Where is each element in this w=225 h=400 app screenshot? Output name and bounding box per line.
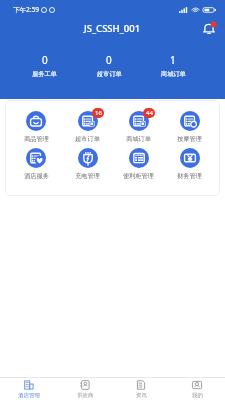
- staticText: 超市订单: [75, 135, 100, 143]
- staticText: 按摩管理: [177, 135, 202, 143]
- button[interactable]: 按摩管理: [164, 111, 215, 143]
- staticText: 服务工单: [32, 70, 57, 78]
- staticText: 便利柜管理: [123, 172, 154, 180]
- button[interactable]: 0: [77, 40, 141, 78]
- button[interactable]: 充电管理: [62, 148, 113, 180]
- button[interactable]: 0: [12, 40, 77, 78]
- staticText: 44: [146, 109, 153, 117]
- button[interactable]: 我的: [169, 378, 225, 400]
- staticText: 0: [106, 53, 112, 67]
- button[interactable]: 财务管理: [164, 148, 215, 180]
- staticText: 下午2:59: [13, 5, 39, 14]
- staticText: 0: [42, 53, 48, 67]
- staticText: 财务管理: [177, 172, 202, 180]
- button[interactable]: 供应商: [57, 378, 113, 400]
- button[interactable]: Notifications: [200, 20, 218, 38]
- staticText: 供应商: [77, 392, 94, 399]
- staticText: 商品管理: [24, 135, 49, 143]
- staticText: 16: [95, 109, 102, 117]
- staticText: JS_CSSH_001: [84, 22, 141, 35]
- staticText: 酒店服务: [24, 172, 49, 180]
- staticText: 商城订单: [161, 70, 186, 78]
- button[interactable]: 酒店管理: [0, 378, 57, 400]
- staticText: 商城订单: [126, 135, 151, 143]
- button[interactable]: 16: [62, 111, 113, 143]
- staticText: 超市订单: [97, 70, 122, 78]
- staticText: 我的: [192, 392, 203, 399]
- button[interactable]: 资讯: [113, 378, 169, 400]
- staticText: 1: [170, 53, 176, 67]
- button[interactable]: 便利柜管理: [113, 148, 164, 180]
- staticText: 资讯: [136, 392, 147, 399]
- button[interactable]: 商品管理: [10, 111, 62, 143]
- button[interactable]: 44: [113, 111, 164, 143]
- staticText: 酒店管理: [18, 392, 40, 399]
- staticText: 充电管理: [75, 172, 100, 180]
- button[interactable]: 酒店服务: [10, 148, 62, 180]
- button[interactable]: 1: [141, 40, 205, 78]
